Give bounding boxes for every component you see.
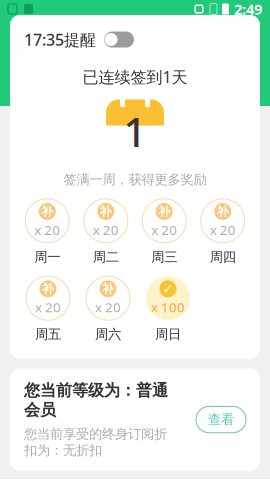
staticText: 您当前享受的终身订阅折扣为：无折扣 (24, 426, 167, 459)
button[interactable]: 补 (196, 198, 250, 265)
staticText: 周日 (155, 326, 181, 343)
button[interactable]: 您当前等级为：普通会员 (0, 368, 270, 471)
staticText: 补 (42, 281, 54, 296)
staticText: 周二 (93, 249, 119, 265)
staticText: x 100 (151, 298, 185, 316)
staticText: x 20 (210, 221, 236, 239)
staticText: 查看 (208, 411, 234, 428)
staticText: 2:49 (234, 0, 262, 19)
staticText: x 20 (151, 221, 177, 239)
button[interactable]: 补 (20, 198, 74, 265)
button[interactable]: 补 (81, 275, 135, 343)
button[interactable]: 提醒开关 (104, 31, 134, 47)
staticText: 周三 (151, 249, 177, 265)
button[interactable]: 补 (79, 198, 133, 265)
staticText: 签满一周，获得更多奖励 (63, 171, 206, 188)
staticText: x 20 (35, 298, 61, 316)
staticText: 周四 (210, 249, 236, 265)
button[interactable]: 补 (21, 275, 75, 343)
staticText: 1 (123, 105, 146, 158)
staticText: 补 (217, 204, 229, 219)
staticText: x 20 (34, 221, 60, 239)
staticText: 您当前等级为：普通会员 (24, 380, 168, 420)
staticText: 福利 (115, 22, 155, 47)
staticText: ✓ (162, 281, 173, 296)
staticText: 已连续签到1天 (82, 66, 187, 87)
staticText: 补 (102, 281, 114, 296)
staticText: 补 (41, 204, 53, 219)
staticText: 补 (100, 204, 112, 219)
staticText: 周五 (35, 326, 61, 343)
button[interactable]: 补 (137, 198, 191, 265)
staticText: 周一 (34, 249, 60, 265)
staticText: 周六 (95, 326, 121, 343)
staticText: x 20 (93, 221, 119, 239)
button[interactable]: ✓ (141, 275, 195, 343)
staticText: 17:35提醒 (24, 29, 96, 50)
staticText: x 20 (95, 298, 121, 316)
staticText: 补 (158, 204, 170, 219)
